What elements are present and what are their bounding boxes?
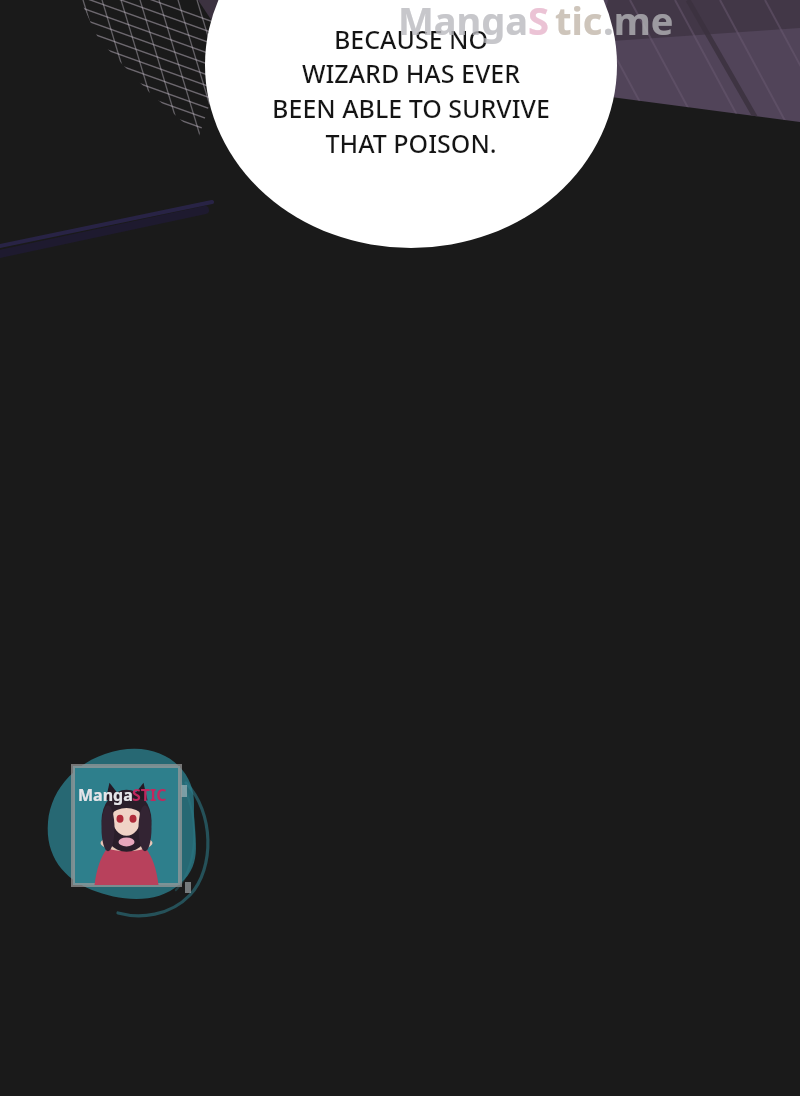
staticText: tic [555,0,603,46]
staticText: Manga [78,784,133,806]
button[interactable]: MangaStic.me watermark [398,0,529,46]
button[interactable]: BECAUSE NO WIZARD HAS EVER BEEN ABLE TO … [0,0,800,1096]
staticText: .me [603,0,674,46]
staticText: STIC [132,784,167,806]
button[interactable]: MangaSTIC logo [78,784,133,806]
staticText: S [528,0,549,46]
staticText: Manga [398,0,529,46]
staticText: BECAUSE NO WIZARD HAS EVER BEEN ABLE TO … [205,22,617,161]
